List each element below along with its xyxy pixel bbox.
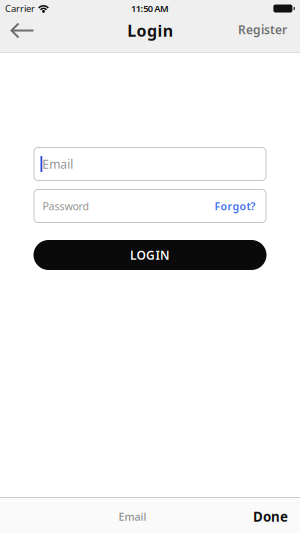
staticText: Password [42,199,89,213]
staticText: Login [127,20,173,41]
staticText: Email [118,509,146,524]
button[interactable]: LOGIN [33,240,266,270]
button[interactable]: Register [238,21,300,39]
button[interactable]: Forgot? [214,199,266,213]
staticText: 11:50 AM [131,2,169,15]
staticText: Email [42,156,73,172]
staticText: Done [253,508,288,525]
staticText: Forgot? [214,199,255,213]
button[interactable]: Done [253,508,300,525]
button[interactable]: Email [33,147,266,181]
staticText: LOGIN [130,247,170,263]
button[interactable]: Back [0,17,35,43]
staticText: Carrier [5,2,35,15]
staticText: Register [238,21,287,37]
